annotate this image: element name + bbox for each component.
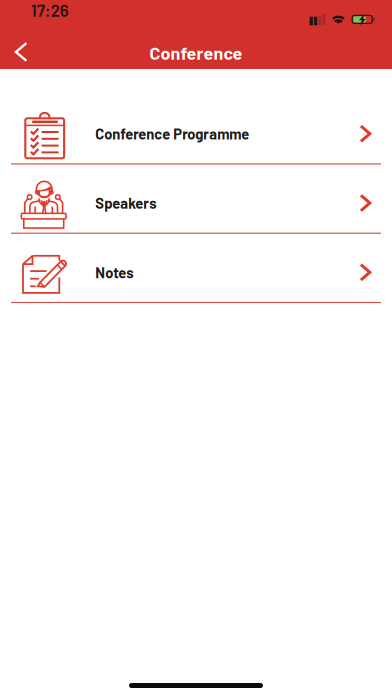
staticText: Speakers [95, 194, 156, 212]
staticText: 17:26 [31, 0, 69, 20]
staticText: Notes [95, 263, 133, 281]
button[interactable]: Back [0, 36, 44, 69]
button[interactable]: Speakers [0, 173, 392, 234]
staticText: Conference Programme [95, 125, 249, 142]
button[interactable]: Notes [0, 243, 392, 303]
staticText: Conference [149, 42, 242, 63]
button[interactable]: Conference Programme [0, 104, 392, 164]
